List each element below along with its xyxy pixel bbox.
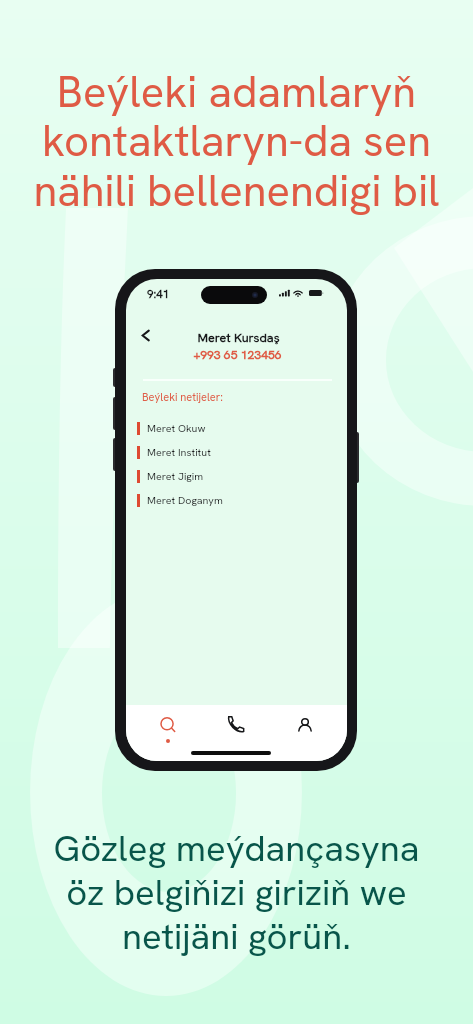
staticText: +993 65 123456 bbox=[127, 347, 347, 363]
staticText: Beýleki adamlaryň kontaktlaryn-da sen nä… bbox=[0, 63, 473, 220]
button[interactable]: Profile bbox=[291, 711, 318, 738]
staticText: Meret Jigim bbox=[147, 469, 204, 483]
staticText: Beýleki netijeler: bbox=[142, 390, 223, 404]
staticText: Meret Okuw bbox=[147, 421, 206, 435]
button[interactable]: Meret Doganym bbox=[137, 490, 347, 510]
staticText: Meret Institut bbox=[147, 445, 211, 459]
button[interactable]: Back bbox=[134, 324, 156, 346]
button[interactable]: Meret Institut bbox=[137, 442, 347, 462]
button[interactable]: Calls bbox=[221, 709, 249, 737]
staticText: Gözleg meýdançasyna öz belgiňizi giriziň… bbox=[0, 824, 473, 960]
button[interactable]: Meret Okuw bbox=[137, 418, 347, 438]
staticText: Meret Doganym bbox=[147, 493, 223, 507]
button[interactable]: Search bbox=[154, 711, 181, 738]
staticText: 9:41 bbox=[147, 286, 170, 301]
button[interactable]: Meret Jigim bbox=[137, 466, 347, 486]
staticText: Meret Kursdaş bbox=[128, 329, 347, 345]
